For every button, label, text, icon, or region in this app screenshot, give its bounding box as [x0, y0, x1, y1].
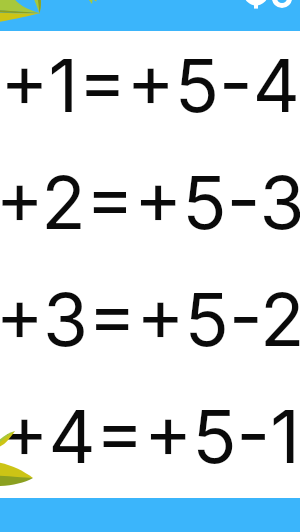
button[interactable]: +2=+5-3	[0, 158, 300, 246]
staticText: +1=+5-4	[0, 41, 300, 129]
staticText: +3=+5-2	[0, 275, 300, 363]
button[interactable]: +3=+5-2	[0, 275, 300, 363]
staticText: +2=+5-3	[0, 158, 300, 246]
button[interactable]: +1=+5-4	[0, 41, 300, 129]
other: Account	[0, 0, 300, 31]
button[interactable]: +4=+5-1	[0, 392, 300, 480]
staticText: +4=+5-1	[0, 392, 300, 480]
